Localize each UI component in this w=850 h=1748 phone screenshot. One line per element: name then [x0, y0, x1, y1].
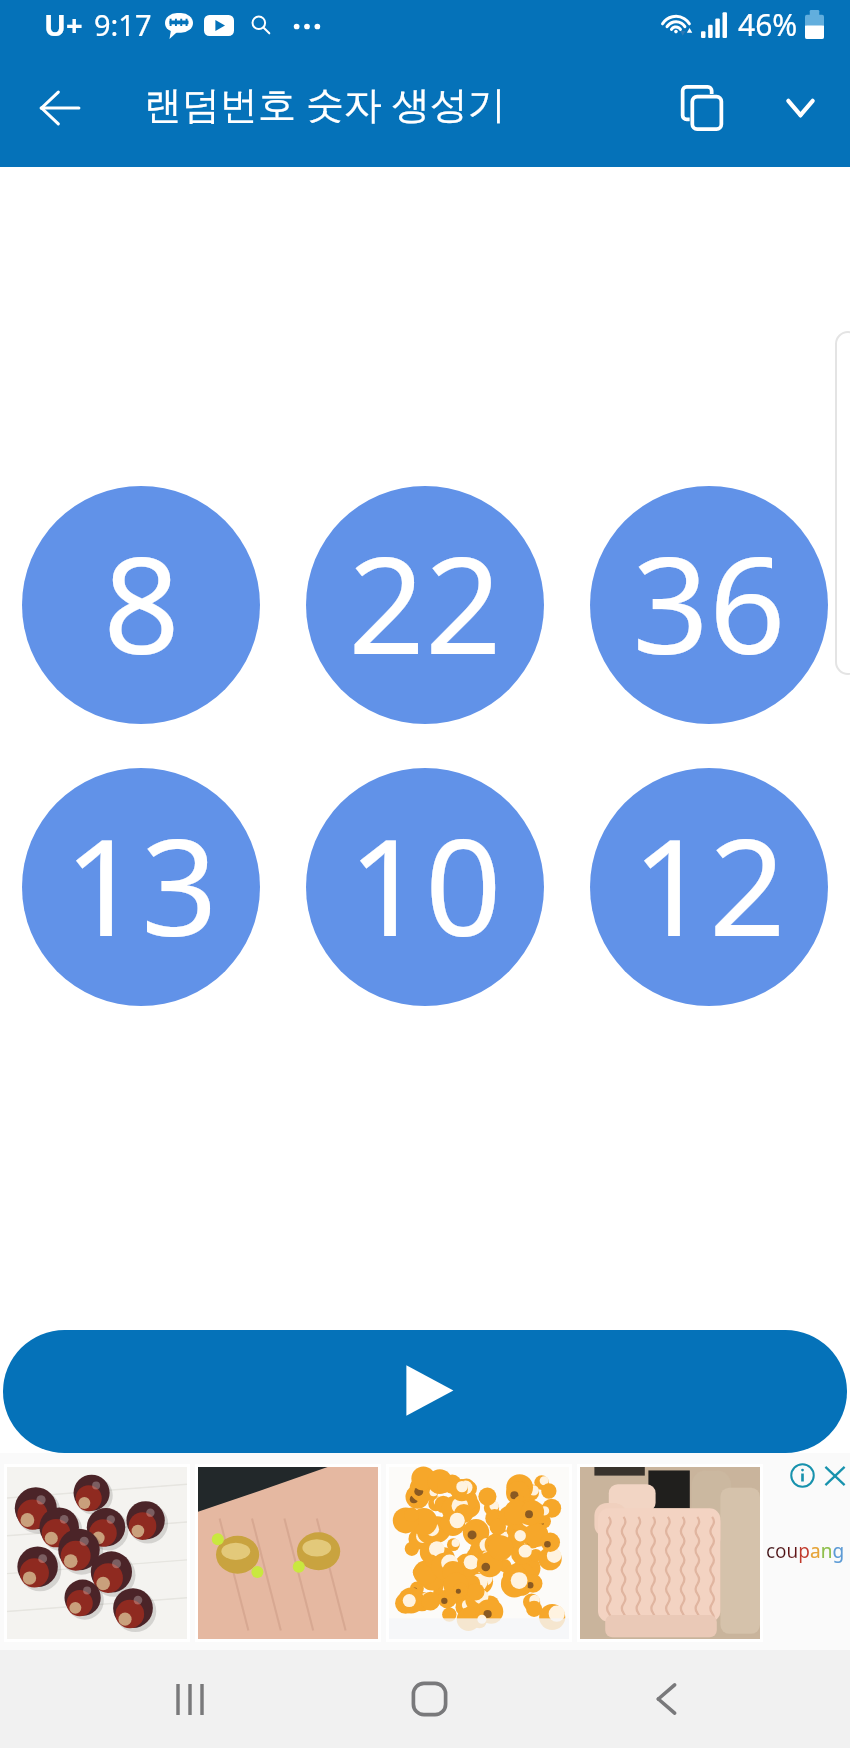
button[interactable]: Advertisement 1 — [4, 1464, 190, 1642]
button[interactable]: 13 — [22, 768, 260, 1006]
staticText: coupang — [766, 1538, 845, 1564]
button[interactable]: Advertisement 4 — [577, 1464, 763, 1642]
staticText: 8 — [103, 511, 180, 694]
staticText: 10 — [348, 793, 502, 976]
staticText: 13 — [64, 793, 218, 976]
button[interactable]: Advertisement 2 — [195, 1464, 381, 1642]
staticText: 랜덤번호 숫자 생성기 — [144, 77, 506, 129]
staticText: U+ — [44, 5, 83, 44]
button[interactable]: 8 — [22, 486, 260, 724]
button[interactable]: Close ad — [823, 1464, 847, 1488]
button[interactable]: Ad info — [790, 1463, 815, 1488]
staticText: 9:17 — [94, 5, 152, 44]
button[interactable]: 22 — [306, 486, 544, 724]
staticText: 22 — [348, 511, 502, 694]
button[interactable]: Generate numbers — [3, 1330, 847, 1453]
button[interactable]: 36 — [590, 486, 828, 724]
staticText: 36 — [632, 511, 786, 694]
button[interactable]: Recent apps — [110, 1650, 270, 1748]
button[interactable]: Back — [0, 58, 109, 167]
button[interactable]: Expand — [741, 58, 850, 167]
button[interactable]: Advertisement 3 — [386, 1464, 572, 1642]
button[interactable]: Home — [349, 1650, 509, 1748]
staticText: 46% — [738, 4, 798, 45]
button[interactable]: Tabs — [632, 58, 741, 167]
staticText: 12 — [632, 793, 786, 976]
button[interactable]: 10 — [306, 768, 544, 1006]
button[interactable]: Back — [586, 1650, 746, 1748]
button[interactable]: 12 — [590, 768, 828, 1006]
